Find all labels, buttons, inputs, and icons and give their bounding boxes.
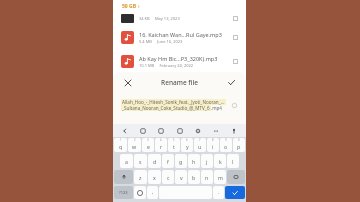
button[interactable]: l — [227, 154, 239, 168]
button[interactable]: n — [201, 170, 213, 184]
staticText: v — [180, 174, 183, 181]
staticText: 9 — [225, 138, 227, 142]
staticText: 7 — [199, 138, 201, 142]
staticText: k — [219, 158, 222, 165]
staticText: . — [218, 189, 220, 196]
staticText: ?123 — [119, 190, 128, 195]
button[interactable]: Close — [121, 76, 134, 89]
button[interactable]: Shift — [114, 170, 133, 184]
staticText: y — [186, 143, 189, 150]
button[interactable]: 3 — [142, 138, 154, 152]
staticText: m — [218, 174, 223, 181]
staticText: g — [179, 158, 183, 165]
staticText: › — [138, 3, 140, 10]
button[interactable]: . — [213, 186, 224, 199]
staticText: Allah_Hoo_-_Hitesh_Sonik_feat._Jyoti_Noo… — [122, 99, 225, 105]
button[interactable]: a — [120, 154, 133, 168]
button[interactable]: 5 — [168, 138, 180, 152]
staticText: _Sultana_Nooran_Coke_Studio_@_MTV_6 — [122, 105, 210, 111]
button[interactable]: 2 — [128, 138, 141, 152]
button[interactable]: 8 — [207, 138, 219, 152]
staticText: c — [167, 174, 170, 181]
button[interactable]: 34 KB May 13, 2023 — [113, 12, 246, 25]
staticText: f — [167, 158, 169, 165]
staticText: 16. Kaichan Wan...Rul Gaye.mp3 — [139, 31, 222, 38]
button[interactable]: 9 — [220, 138, 232, 152]
staticText: 3 — [147, 138, 149, 142]
button[interactable]: d — [148, 154, 161, 168]
staticText: , — [152, 189, 154, 196]
button[interactable]: b — [188, 170, 200, 184]
button[interactable]: z — [134, 170, 147, 184]
staticText: 34 KB May 13, 2023 — [139, 16, 180, 21]
button[interactable]: Clipboard — [175, 126, 185, 136]
button[interactable]: x — [148, 170, 161, 184]
staticText: 10.1 MB February 24, 2022 — [139, 63, 194, 68]
staticText: q — [119, 143, 123, 150]
staticText: 50 GB — [122, 3, 136, 10]
staticText: 1 — [120, 138, 122, 142]
staticText: 5 — [173, 138, 175, 142]
staticText: p — [237, 143, 241, 150]
staticText: e — [147, 143, 150, 150]
button[interactable]: v — [175, 170, 187, 184]
staticText: s — [139, 158, 142, 165]
button[interactable]: s — [134, 154, 147, 168]
staticText: .mp4 — [211, 105, 222, 111]
button[interactable]: Backspace — [227, 170, 245, 184]
button[interactable]: 7 — [194, 138, 206, 152]
staticText: t — [173, 143, 175, 150]
button[interactable]: k — [214, 154, 226, 168]
button[interactable]: More options — [211, 126, 221, 136]
button[interactable]: ?123 — [114, 186, 133, 199]
staticText: Rename file — [161, 78, 198, 87]
button[interactable]: , — [147, 186, 158, 199]
button[interactable]: f — [162, 154, 174, 168]
staticText: n — [205, 174, 209, 181]
button[interactable]: 4 — [155, 138, 167, 152]
button[interactable]: Emoji — [134, 186, 146, 199]
button[interactable]: 1 — [114, 138, 127, 152]
button[interactable]: Ab Kay Hm Bic...P3_320K).mp3 — [113, 49, 246, 73]
button[interactable]: j — [201, 154, 213, 168]
staticText: a — [125, 158, 128, 165]
button[interactable]: Confirm rename — [225, 76, 238, 89]
staticText: o — [224, 143, 228, 150]
button[interactable]: Allah_Hoo_-_Hitesh_Sonik_feat._Jyoti_Noo… — [121, 99, 238, 111]
staticText: w — [132, 143, 137, 150]
button[interactable]: Done — [225, 186, 245, 199]
staticText: 4 — [160, 138, 162, 142]
staticText: u — [198, 143, 202, 150]
button[interactable]: Back — [120, 126, 130, 136]
button[interactable]: c — [162, 170, 174, 184]
staticText: 5.4 MB June 16, 2023 — [139, 39, 183, 44]
button[interactable]: Stickers — [138, 126, 148, 136]
staticText: 6 — [186, 138, 188, 142]
staticText: j — [206, 158, 208, 165]
staticText: x — [153, 174, 156, 181]
button[interactable]: GIF — [156, 126, 166, 136]
button[interactable]: Clear text — [230, 101, 238, 109]
staticText: r — [160, 143, 163, 150]
button[interactable]: h — [188, 154, 200, 168]
staticText: d — [153, 158, 157, 165]
staticText: h — [192, 158, 196, 165]
button[interactable]: m — [214, 170, 226, 184]
button[interactable]: Voice input — [229, 126, 239, 136]
button[interactable]: 16. Kaichan Wan...Rul Gaye.mp3 — [113, 25, 246, 49]
staticText: 8 — [212, 138, 214, 142]
button[interactable]: 6 — [181, 138, 193, 152]
button[interactable]: 0 — [233, 138, 245, 152]
staticText: i — [212, 143, 214, 150]
staticText: z — [139, 174, 142, 181]
staticText: b — [192, 174, 196, 181]
staticText: Ab Kay Hm Bic...P3_320K).mp3 — [139, 55, 218, 62]
button[interactable]: Settings — [193, 126, 203, 136]
staticText: 2 — [134, 138, 136, 142]
button[interactable]: g — [175, 154, 187, 168]
staticText: l — [232, 158, 234, 165]
staticText: 0 — [238, 138, 240, 142]
